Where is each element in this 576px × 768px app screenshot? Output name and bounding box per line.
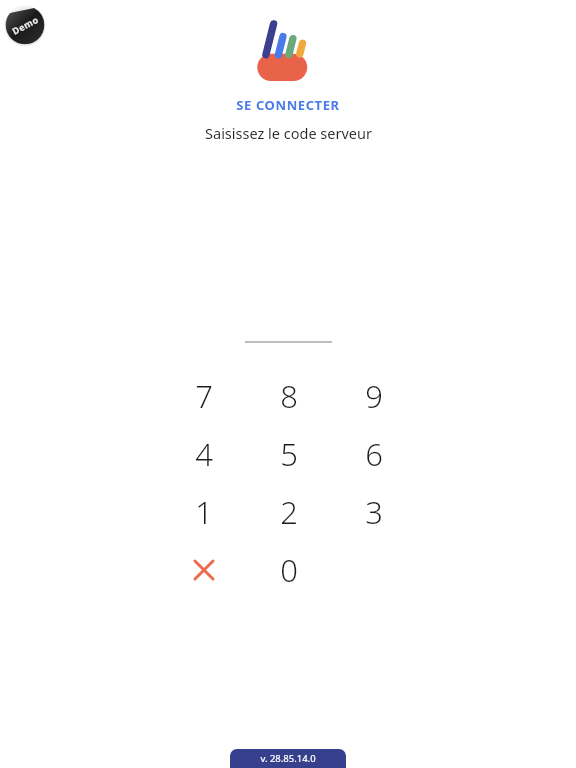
button[interactable]: 1 — [161, 483, 246, 541]
staticText: 9 — [365, 375, 383, 417]
button[interactable]: 6 — [331, 425, 416, 483]
staticText: 4 — [195, 433, 213, 475]
button[interactable] — [245, 323, 332, 343]
staticText: 3 — [365, 491, 383, 533]
button[interactable]: 2 — [246, 483, 331, 541]
button[interactable]: Effacer — [161, 541, 246, 599]
staticText: 8 — [280, 375, 298, 417]
staticText: Saisissez le code serveur — [205, 123, 372, 143]
staticText: 5 — [280, 433, 298, 475]
staticText: 6 — [365, 433, 383, 475]
button[interactable]: Demo — [3, 3, 47, 47]
button[interactable]: 5 — [246, 425, 331, 483]
button[interactable]: 7 — [161, 367, 246, 425]
staticText: SE CONNECTER — [236, 96, 340, 114]
staticText: Demo — [10, 13, 40, 37]
button[interactable]: 0 — [246, 541, 331, 599]
staticText: 2 — [280, 491, 298, 533]
staticText: 7 — [195, 375, 213, 417]
staticText: v. 28.85.14.0 — [260, 752, 316, 765]
button[interactable]: v. 28.85.14.0 — [230, 749, 346, 768]
button[interactable]: 4 — [161, 425, 246, 483]
button[interactable]: 8 — [246, 367, 331, 425]
button[interactable]: 9 — [331, 367, 416, 425]
staticText: 1 — [195, 491, 213, 533]
button[interactable]: 3 — [331, 483, 416, 541]
staticText: 0 — [280, 549, 298, 591]
